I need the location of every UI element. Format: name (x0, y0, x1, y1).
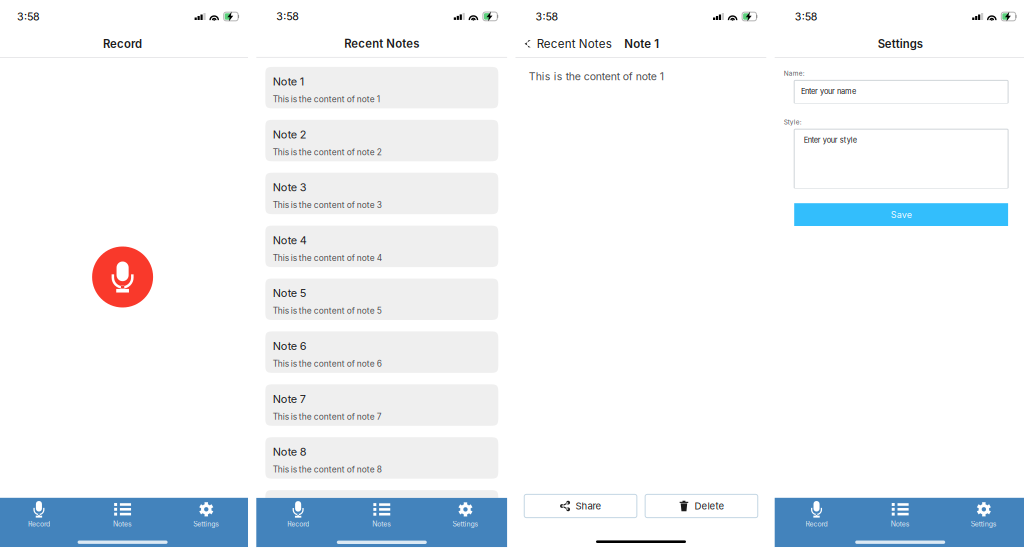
staticText: Note 5 (273, 286, 307, 300)
staticText: Note 8 (273, 445, 307, 458)
staticText: Record (28, 520, 50, 528)
staticText: This is the content of note 8 (273, 464, 382, 475)
button[interactable]: Note 9 (265, 490, 498, 532)
staticText: This is the content of note 3 (273, 200, 382, 210)
staticText: Note 7 (273, 392, 306, 405)
button[interactable]: Save (794, 203, 1008, 226)
button[interactable]: Note 7 (265, 384, 498, 426)
staticText: Note 4 (273, 234, 307, 247)
staticText: 3:58 (795, 10, 818, 23)
staticText: Note 2 (273, 128, 307, 141)
staticText: Settings (878, 37, 923, 51)
button[interactable]: Settings (424, 498, 507, 530)
staticText: Notes (113, 520, 132, 528)
button[interactable]: Note 6 (265, 331, 498, 373)
staticText: Save (891, 209, 912, 220)
button[interactable]: Share (524, 494, 637, 518)
staticText: Note 1 (624, 37, 659, 51)
button[interactable]: Notes (340, 498, 424, 530)
button[interactable]: Note 5 (265, 278, 498, 320)
staticText: This is the content of note 1 (529, 70, 664, 83)
button[interactable]: Notes (81, 498, 164, 530)
button[interactable]: Record (256, 498, 340, 530)
staticText: This is the content of note 5 (273, 306, 382, 316)
button[interactable]: Note 2 (265, 120, 498, 161)
staticText: Style: (784, 118, 802, 126)
staticText: Settings (971, 520, 997, 528)
staticText: Note 9 (273, 498, 307, 511)
button[interactable]: Notes (858, 498, 942, 530)
button[interactable]: Record (775, 498, 858, 530)
staticText: Share (575, 500, 601, 512)
button[interactable]: Delete (645, 494, 758, 518)
staticText: Recent Notes (537, 37, 612, 51)
button[interactable]: Note 1 (265, 67, 498, 108)
staticText: This is the content of note 4 (273, 253, 382, 263)
staticText: 3:58 (17, 10, 40, 23)
staticText: Enter your name (801, 87, 856, 96)
staticText: Enter your style (804, 136, 857, 145)
staticText: Delete (694, 500, 724, 512)
staticText: Settings (452, 520, 478, 528)
button[interactable]: Note 4 (265, 226, 498, 267)
staticText: Settings (193, 520, 219, 528)
staticText: Note 3 (273, 181, 307, 194)
staticText: This is the content of note 9 (273, 517, 382, 527)
staticText: 3:58 (276, 10, 299, 23)
staticText: Name: (784, 69, 805, 77)
button[interactable]: Start recording (92, 246, 153, 307)
staticText: 3:58 (535, 10, 558, 23)
staticText: Note 6 (273, 339, 307, 353)
staticText: Record (103, 37, 142, 51)
staticText: Notes (891, 520, 910, 528)
button[interactable]: Note 3 (265, 173, 498, 214)
button[interactable]: Note 8 (265, 437, 498, 479)
staticText: Record (805, 520, 827, 528)
staticText: This is the content of note 6 (273, 359, 382, 369)
staticText: Record (287, 520, 309, 528)
staticText: This is the content of note 2 (273, 147, 382, 157)
staticText: Note 1 (273, 75, 304, 88)
staticText: This is the content of note 1 (273, 94, 380, 104)
button[interactable]: Settings (942, 498, 1024, 530)
button[interactable]: Recent Notes (515, 29, 618, 59)
button[interactable]: Settings (164, 498, 248, 530)
button[interactable]: Record (0, 498, 81, 530)
staticText: Notes (372, 520, 391, 528)
staticText: This is the content of note 7 (273, 411, 382, 422)
staticText: Recent Notes (344, 37, 419, 50)
